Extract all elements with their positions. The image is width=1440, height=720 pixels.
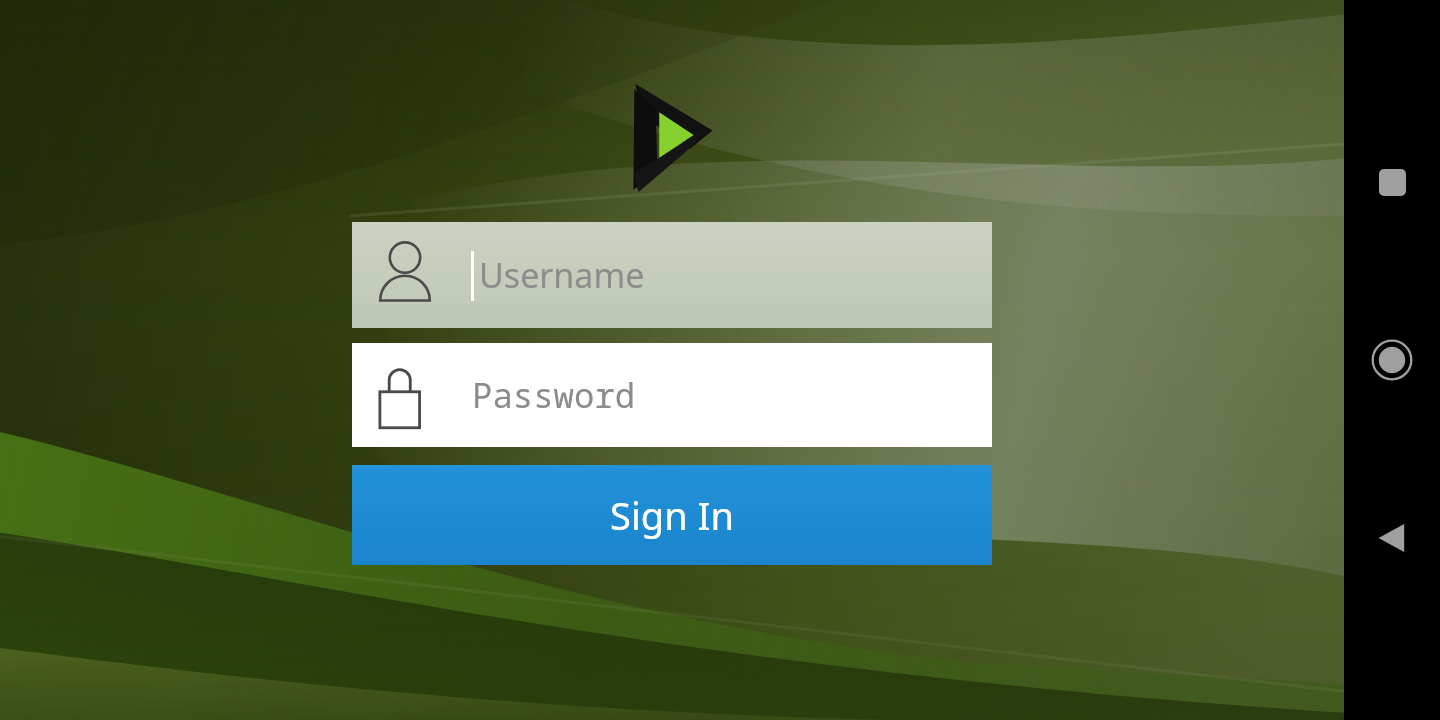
button[interactable]: Password [352, 343, 992, 447]
button[interactable]: Recent apps [1360, 150, 1424, 214]
staticText: Username [479, 252, 645, 298]
button[interactable]: Back [1360, 506, 1424, 570]
button[interactable]: Sign In [352, 465, 992, 565]
staticText: Password [472, 372, 636, 418]
staticText: Sign In [610, 489, 734, 541]
button[interactable]: Home [1360, 328, 1424, 392]
button[interactable]: Username [352, 222, 992, 328]
